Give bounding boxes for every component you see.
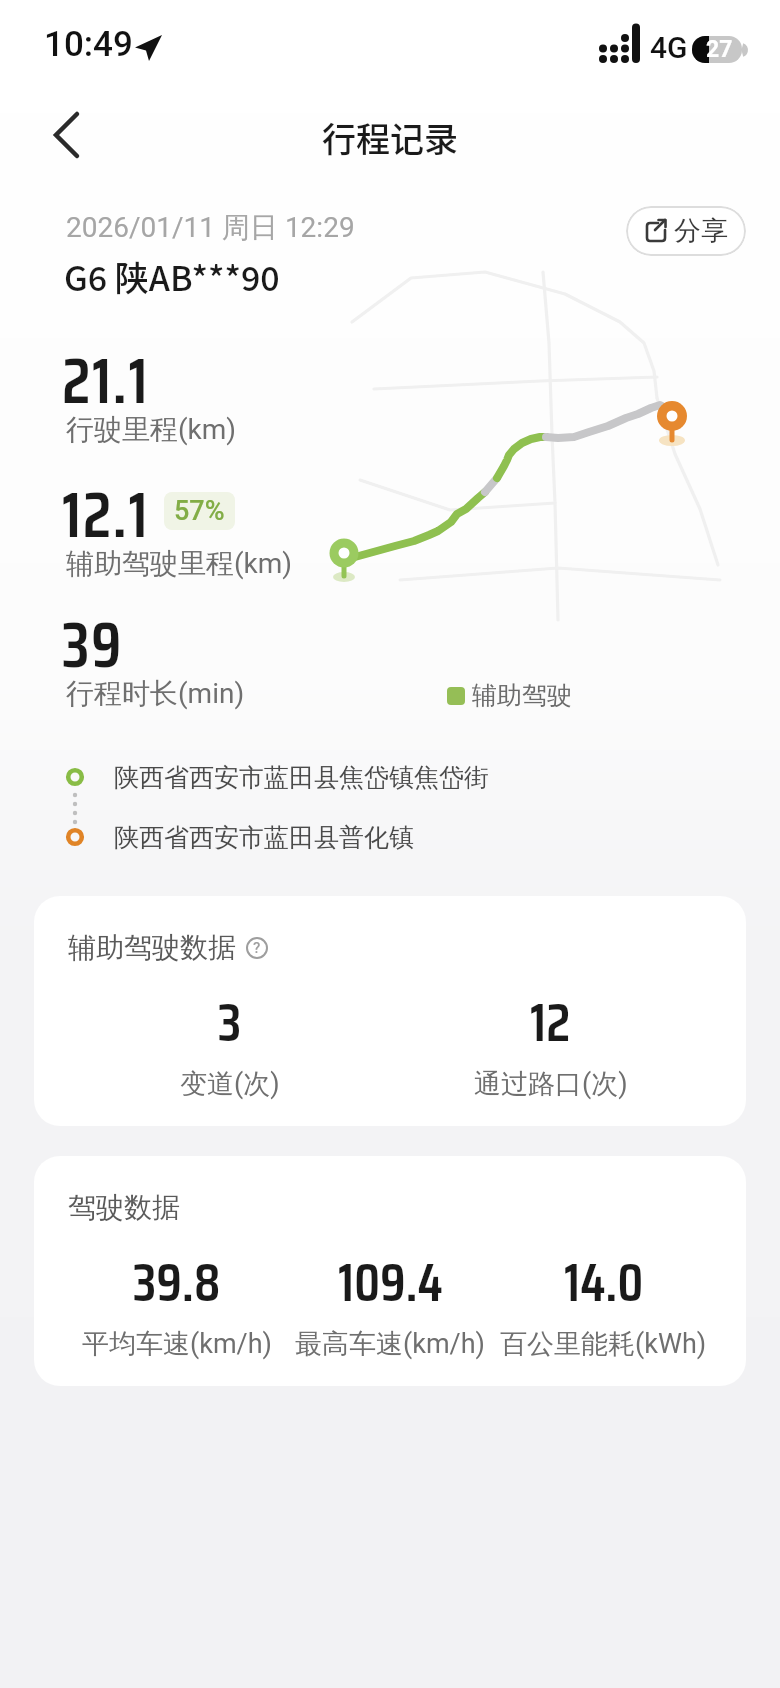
- button[interactable]: 分享: [626, 206, 746, 256]
- staticText: 21.1: [62, 330, 150, 431]
- staticText: 行程记录: [322, 113, 458, 162]
- staticText: 3: [218, 980, 242, 1065]
- button[interactable]: ?: [244, 935, 270, 961]
- staticText: 分享: [674, 214, 728, 248]
- staticText: 辅助驾驶里程(km): [66, 546, 293, 581]
- staticText: 12: [530, 980, 571, 1065]
- staticText: 14.0: [564, 1240, 644, 1325]
- staticText: G6 陕AB***90: [64, 252, 280, 301]
- staticText: 百公里能耗(kWh): [500, 1327, 707, 1361]
- staticText: 2026/01/11 周日 12:29: [66, 210, 355, 245]
- staticText: 39: [62, 594, 123, 695]
- staticText: 27: [706, 36, 733, 63]
- staticText: 陕西省西安市蓝田县普化镇: [114, 822, 414, 853]
- staticText: 39.8: [133, 1240, 221, 1325]
- staticText: 行程时长(min): [66, 676, 245, 711]
- staticText: 辅助驾驶: [472, 680, 572, 711]
- staticText: 10:49: [44, 24, 133, 65]
- staticText: 通过路口(次): [474, 1067, 628, 1101]
- staticText: 57%: [174, 495, 225, 527]
- staticText: 最高车速(km/h): [295, 1327, 486, 1361]
- staticText: 109.4: [338, 1240, 443, 1325]
- staticText: 12.1: [62, 464, 150, 565]
- staticText: 驾驶数据: [68, 1190, 180, 1225]
- button[interactable]: [36, 102, 102, 168]
- staticText: 平均车速(km/h): [82, 1327, 273, 1361]
- staticText: 变道(次): [180, 1067, 280, 1101]
- staticText: 辅助驾驶数据: [68, 930, 236, 965]
- staticText: 陕西省西安市蓝田县焦岱镇焦岱街: [114, 762, 489, 793]
- staticText: ?: [253, 939, 261, 957]
- staticText: 4G: [650, 30, 688, 65]
- staticText: 行驶里程(km): [66, 412, 237, 447]
